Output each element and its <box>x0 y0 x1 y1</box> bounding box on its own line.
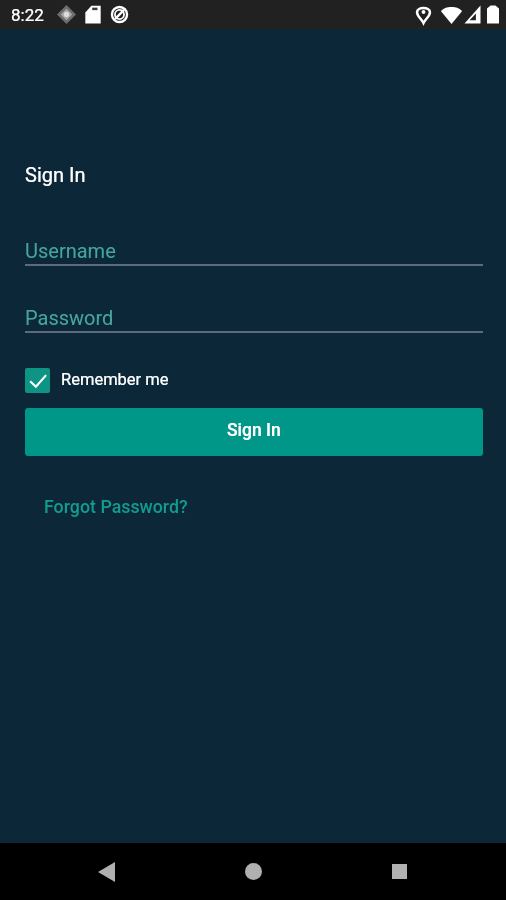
button[interactable]: Remember me <box>25 368 169 393</box>
staticText: Forgot Password? <box>44 496 188 517</box>
button[interactable]: Home <box>206 843 301 900</box>
staticText: Sign In <box>25 163 86 186</box>
staticText: Username <box>25 239 116 262</box>
staticText: Sign In <box>227 420 281 441</box>
button[interactable]: Forgot Password? <box>33 490 199 523</box>
button[interactable]: Sign In <box>25 408 483 456</box>
staticText: Password <box>25 306 114 329</box>
button[interactable]: Recent apps <box>352 843 447 900</box>
button[interactable]: Back <box>59 843 154 900</box>
staticText: 8:22 <box>11 5 44 25</box>
staticText: Remember me <box>61 370 169 389</box>
